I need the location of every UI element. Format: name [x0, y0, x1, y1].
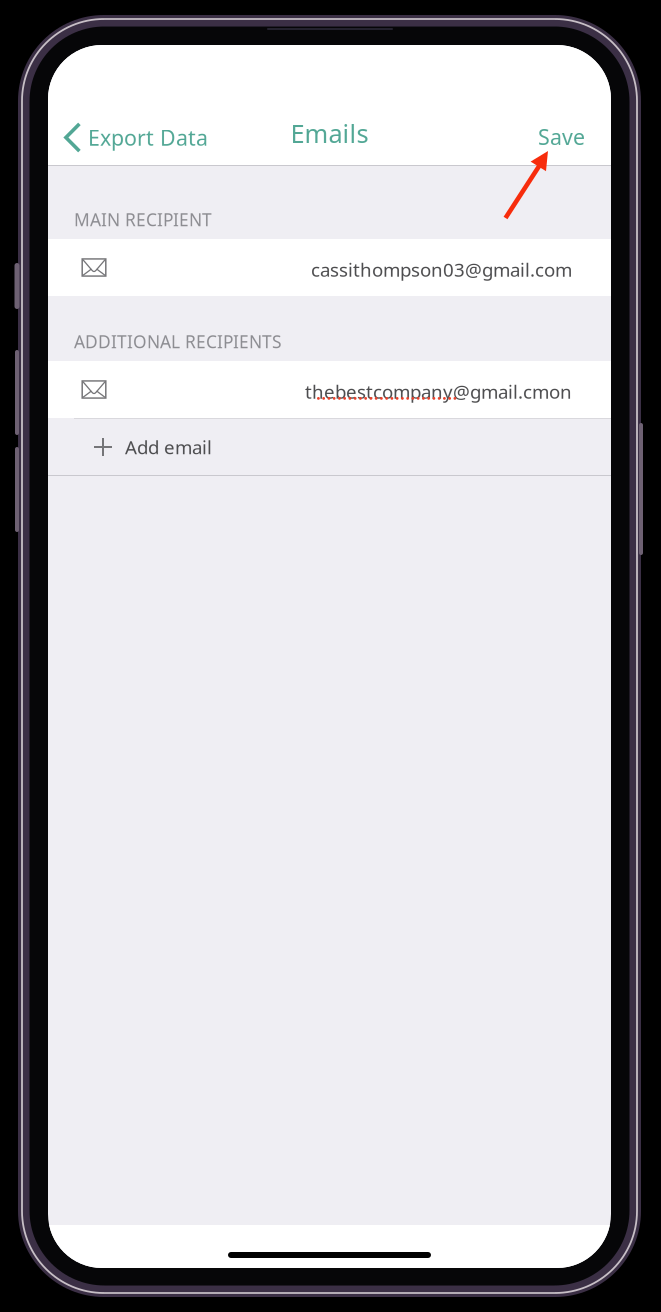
- staticText: Emails: [290, 116, 368, 150]
- staticText: Add email: [125, 435, 212, 459]
- button[interactable]: Save: [522, 111, 611, 166]
- staticText: Export Data: [88, 123, 208, 152]
- button[interactable]: Export Data: [48, 112, 220, 166]
- staticText: MAIN RECIPIENT: [74, 208, 212, 231]
- button[interactable]: thebestcompany@gmail.cmon: [48, 361, 611, 418]
- staticText: thebestcompany@gmail.cmon: [305, 379, 572, 404]
- button[interactable]: Add email: [48, 418, 611, 476]
- staticText: Save: [538, 123, 585, 151]
- button[interactable]: cassithompson03@gmail.com: [48, 239, 611, 296]
- staticText: cassithompson03@gmail.com: [311, 257, 572, 282]
- staticText: ADDITIONAL RECIPIENTS: [74, 330, 282, 353]
